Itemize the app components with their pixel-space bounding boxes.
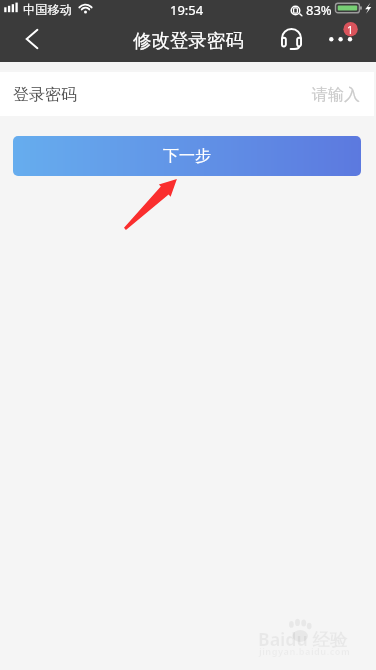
button[interactable]: 下一步 xyxy=(13,136,361,176)
staticText: jingyan.baidu.com xyxy=(259,645,351,657)
staticText: 修改登录密码 xyxy=(133,29,244,52)
button[interactable]: More options xyxy=(320,22,364,62)
staticText: 83% xyxy=(306,1,332,19)
button[interactable]: Customer support xyxy=(269,22,313,62)
staticText: 中国移动 xyxy=(23,2,72,17)
button[interactable]: Back xyxy=(0,22,54,62)
staticText: Baidu 经验 xyxy=(258,627,348,651)
staticText: 请输入 xyxy=(312,85,360,105)
staticText: 19:54 xyxy=(170,1,204,19)
staticText: 登录密码 xyxy=(13,85,77,105)
staticText: 1 xyxy=(347,22,354,36)
staticText: 下一步 xyxy=(163,146,211,166)
button[interactable]: 登录密码 xyxy=(0,72,374,116)
